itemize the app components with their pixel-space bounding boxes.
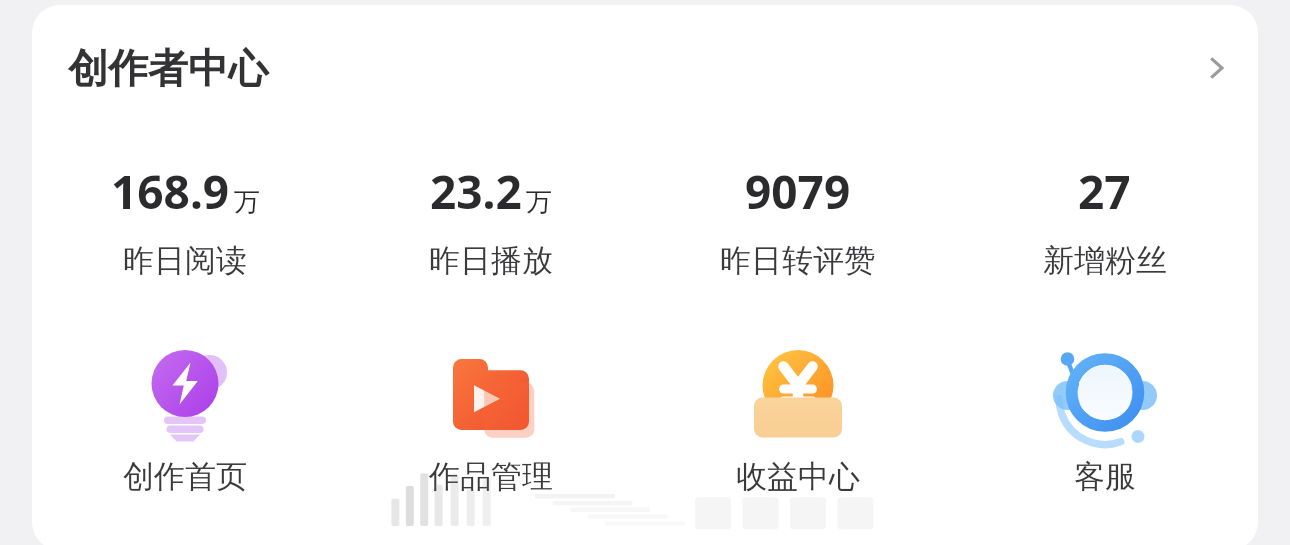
staticText: 9079: [745, 160, 851, 223]
staticText: 收益中心: [736, 457, 860, 496]
staticText: 昨日播放: [429, 241, 553, 280]
staticText: 昨日转评赞: [720, 241, 875, 280]
staticText: 创作者中心: [68, 43, 268, 93]
button[interactable]: 27: [951, 160, 1258, 280]
button[interactable]: 客服: [951, 345, 1258, 496]
staticText: 23.2: [430, 160, 522, 223]
button[interactable]: 创作者中心: [32, 5, 1258, 130]
staticText: 昨日阅读: [123, 241, 247, 280]
button[interactable]: 创作首页: [32, 345, 338, 496]
staticText: 创作首页: [123, 457, 247, 496]
staticText: 万: [526, 186, 552, 219]
button[interactable]: 作品管理: [338, 345, 644, 496]
staticText: 168.9: [111, 160, 230, 223]
button[interactable]: 9079: [644, 160, 951, 280]
staticText: 27: [1078, 160, 1131, 223]
staticText: 客服: [1074, 457, 1136, 496]
staticText: 新增粉丝: [1043, 241, 1167, 280]
button[interactable]: 收益中心: [644, 345, 951, 496]
staticText: 作品管理: [429, 457, 553, 496]
button[interactable]: 168.9: [32, 160, 338, 280]
other: 进入创作者中心: [1186, 38, 1246, 98]
button[interactable]: 23.2: [338, 160, 644, 280]
staticText: 万: [234, 186, 260, 219]
